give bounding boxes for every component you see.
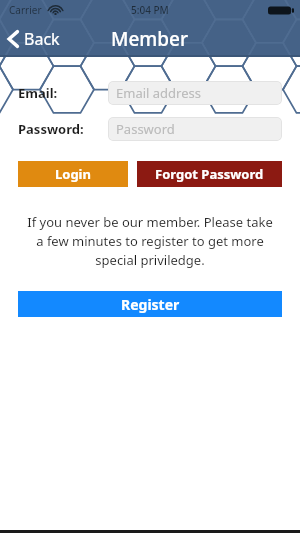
button[interactable]: Login [18,161,128,187]
staticText: Password [116,120,175,138]
staticText: Carrier [9,3,42,17]
button[interactable]: Register [18,291,282,317]
button[interactable]: Forgot Password [137,161,282,187]
staticText: Password: [18,120,84,138]
staticText: Email address [116,84,201,102]
button[interactable]: Back [0,23,72,55]
button[interactable]: Email address [108,81,282,105]
staticText: Login [55,165,91,183]
staticText: Member [111,26,189,52]
staticText: Email: [18,84,58,102]
staticText: Back [24,28,60,50]
staticText: Forgot Password [155,165,264,183]
staticText: Register [121,295,180,314]
staticText: If you never be our member. Please take … [22,213,278,269]
button[interactable]: Password [108,117,282,141]
staticText: 5:04 PM [131,3,169,17]
